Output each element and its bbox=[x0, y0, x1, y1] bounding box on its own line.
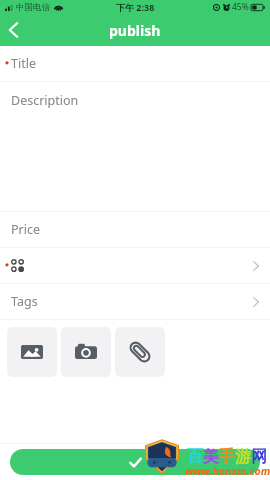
staticText: 百 bbox=[187, 447, 203, 467]
staticText: 美 bbox=[203, 447, 219, 467]
staticText: publish bbox=[109, 21, 161, 40]
staticText: www.hanxm.com bbox=[185, 464, 270, 478]
staticText: Title bbox=[11, 55, 36, 72]
button[interactable]: Back bbox=[0, 14, 26, 46]
staticText: 下午 2:38 bbox=[116, 1, 155, 13]
staticText: 45% bbox=[232, 1, 249, 13]
staticText: 中国电信 bbox=[16, 2, 50, 13]
button[interactable]: Submit bbox=[10, 449, 260, 475]
staticText: Tags bbox=[11, 293, 38, 310]
staticText: 手 bbox=[219, 447, 235, 467]
button[interactable]: Attach file bbox=[115, 327, 165, 377]
button[interactable]: Category bbox=[0, 248, 270, 283]
staticText: 网 bbox=[251, 447, 267, 467]
staticText: 游 bbox=[235, 447, 251, 467]
button[interactable]: Take photo bbox=[61, 327, 111, 377]
staticText: Price bbox=[11, 221, 41, 238]
button[interactable]: Tags bbox=[0, 284, 270, 319]
button[interactable]: Add image bbox=[7, 327, 57, 377]
staticText: Description bbox=[11, 92, 79, 109]
